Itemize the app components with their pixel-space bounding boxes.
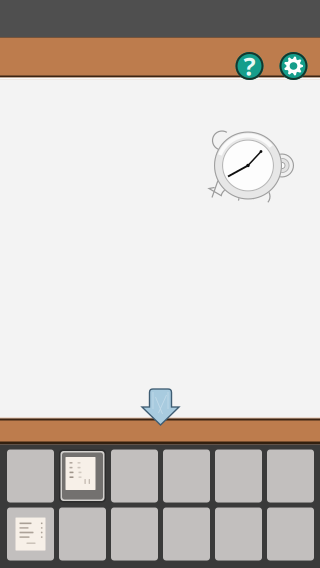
button[interactable]	[111, 449, 158, 502]
button[interactable]	[215, 449, 262, 502]
button[interactable]	[111, 507, 158, 560]
button[interactable]	[163, 507, 210, 560]
button[interactable]	[59, 507, 106, 560]
button[interactable]: Settings	[279, 52, 307, 80]
button[interactable]	[215, 507, 262, 560]
button[interactable]	[59, 449, 106, 502]
button[interactable]	[7, 507, 54, 560]
button[interactable]	[267, 449, 314, 502]
button[interactable]	[267, 507, 314, 560]
staticText: ?	[243, 49, 255, 83]
button[interactable]	[163, 449, 210, 502]
button[interactable]	[7, 449, 54, 502]
button[interactable]: Help	[235, 52, 263, 80]
